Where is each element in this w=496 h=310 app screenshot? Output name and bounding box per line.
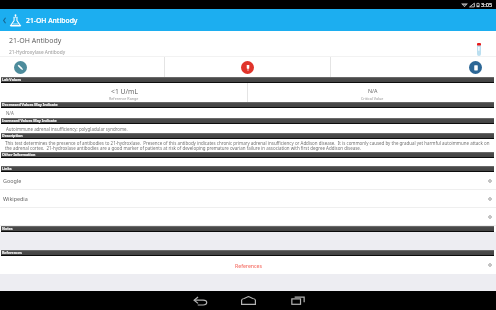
staticText: Google: [3, 177, 22, 184]
other: Options: [488, 197, 492, 201]
staticText: Decreased Values May Indicate: [2, 102, 58, 107]
staticText: N/A: [6, 110, 14, 116]
staticText: N/A: [368, 87, 378, 94]
other: Options: [488, 215, 492, 219]
staticText: 3:05: [481, 1, 493, 9]
staticText: This test determines the presence of ant…: [5, 140, 494, 152]
staticText: References: [235, 262, 262, 269]
button[interactable]: Notes: [331, 57, 496, 77]
staticText: Notes: [2, 226, 13, 231]
other: Options: [488, 263, 492, 267]
staticText: Reference Range: [109, 96, 139, 101]
button[interactable]: Pin: [165, 57, 330, 77]
button[interactable]: Recent apps: [273, 291, 322, 310]
staticText: References: [2, 250, 22, 255]
button[interactable]: Edit: [0, 57, 164, 77]
staticText: 21-OH Antibody: [26, 16, 78, 25]
button[interactable]: Back: [0, 9, 9, 31]
staticText: Increased Values May Indicate: [2, 118, 57, 123]
staticText: Links: [2, 166, 12, 171]
staticText: Lab Values: [2, 77, 22, 82]
staticText: 21-Hydroxylase Antibody: [9, 49, 66, 56]
button[interactable]: References: [0, 256, 496, 274]
button[interactable]: Google: [0, 172, 496, 189]
button[interactable]: Home: [224, 291, 273, 310]
staticText: Other Information: [2, 152, 36, 157]
staticText: Autoimmune adrenal insufficiency; polygl…: [6, 126, 128, 132]
staticText: Wikipedia: [3, 195, 28, 202]
staticText: <1 U/mL: [111, 87, 138, 96]
button[interactable]: Wikipedia: [0, 190, 496, 207]
staticText: Description: [2, 133, 23, 138]
button[interactable]: Back: [175, 291, 224, 310]
other: Options: [488, 179, 492, 183]
staticText: 21-OH Antibody: [9, 36, 62, 46]
staticText: Critical Value: [361, 96, 384, 101]
